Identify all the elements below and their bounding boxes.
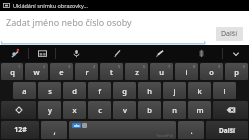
button[interactable]: . (178, 121, 204, 139)
button[interactable]: t (100, 63, 123, 80)
button[interactable]: o (200, 63, 223, 80)
button[interactable]: g (113, 82, 136, 99)
staticText: u (159, 67, 164, 77)
staticText: z (135, 67, 139, 77)
button[interactable]: Stickers (180, 45, 222, 62)
button[interactable]: y (38, 101, 61, 119)
button[interactable]: i (175, 63, 198, 80)
button[interactable]: k (188, 82, 211, 99)
button[interactable]: Další (216, 27, 243, 41)
staticText: e (59, 67, 64, 77)
button[interactable]: w (25, 63, 48, 80)
button[interactable]: s (38, 82, 61, 99)
staticText: o (209, 67, 214, 77)
button[interactable]: u (150, 63, 173, 80)
staticText: a (22, 86, 27, 96)
staticText: Zadat jméno nebo číslo osoby (6, 16, 132, 28)
button[interactable]: Další (206, 121, 248, 139)
staticText: , (53, 125, 56, 136)
staticText: Další (221, 29, 238, 39)
button[interactable]: Settings (0, 45, 28, 62)
staticText: b (147, 105, 152, 115)
staticText: c (98, 105, 102, 115)
staticText: l (223, 86, 226, 96)
button[interactable]: a (13, 82, 36, 99)
button[interactable]: f (88, 82, 111, 99)
button[interactable]: j (163, 82, 186, 99)
staticText: v (123, 105, 127, 115)
button[interactable]: Hide keyboard (223, 45, 249, 62)
button[interactable]: Voice input (56, 45, 97, 62)
staticText: 1 (18, 64, 21, 69)
staticText: r (85, 67, 89, 77)
button[interactable]: n (163, 101, 186, 119)
button[interactable]: 12# (1, 121, 39, 139)
button[interactable]: Space (69, 121, 176, 139)
button[interactable]: e (50, 63, 73, 80)
staticText: 3 (68, 64, 71, 69)
staticText: Další (219, 126, 235, 135)
button[interactable]: z (125, 63, 148, 80)
button[interactable]: p (225, 63, 248, 80)
button[interactable]: c (88, 101, 111, 119)
staticText: 9 (218, 64, 221, 69)
staticText: abc (74, 123, 80, 128)
button[interactable]: d (63, 82, 86, 99)
staticText: d (72, 86, 77, 96)
staticText: y (48, 105, 52, 115)
staticText: TouchPal (156, 133, 173, 138)
staticText: 0 (243, 64, 246, 69)
button[interactable]: h (138, 82, 161, 99)
button[interactable]: b (138, 101, 161, 119)
staticText: 4 (93, 64, 96, 69)
staticText: f (98, 86, 101, 96)
button[interactable]: r (75, 63, 98, 80)
button[interactable]: Handwriting (97, 45, 138, 62)
staticText: k (197, 86, 202, 96)
staticText: p (234, 67, 239, 77)
staticText: x (72, 105, 77, 115)
staticText: 5 (118, 64, 121, 69)
staticText: w (33, 67, 40, 77)
staticText: m (196, 105, 204, 115)
staticText: i (185, 67, 188, 77)
button[interactable] (213, 101, 248, 119)
staticText: s (48, 86, 52, 96)
button[interactable] (1, 101, 36, 119)
staticText: 7 (168, 64, 171, 69)
button[interactable]: v (113, 101, 136, 119)
staticText: g (122, 86, 127, 96)
staticText: Ukládání snímku obrazovky… (13, 2, 88, 9)
staticText: 6 (143, 64, 146, 69)
staticText: 2 (43, 64, 46, 69)
staticText: q (10, 67, 15, 77)
button[interactable]: m (188, 101, 211, 119)
button[interactable]: Theme (138, 45, 180, 62)
button[interactable]: l (213, 82, 236, 99)
button[interactable]: q (1, 63, 23, 80)
staticText: j (173, 86, 176, 96)
staticText: h (147, 86, 152, 96)
button[interactable]: Keyboard layouts (29, 45, 55, 62)
staticText: 8 (193, 64, 196, 69)
staticText: 12# (14, 125, 27, 135)
button[interactable]: x (63, 101, 86, 119)
staticText: t (110, 67, 113, 77)
button[interactable]: , (41, 121, 67, 139)
staticText: . (190, 125, 193, 136)
staticText: n (172, 105, 177, 115)
